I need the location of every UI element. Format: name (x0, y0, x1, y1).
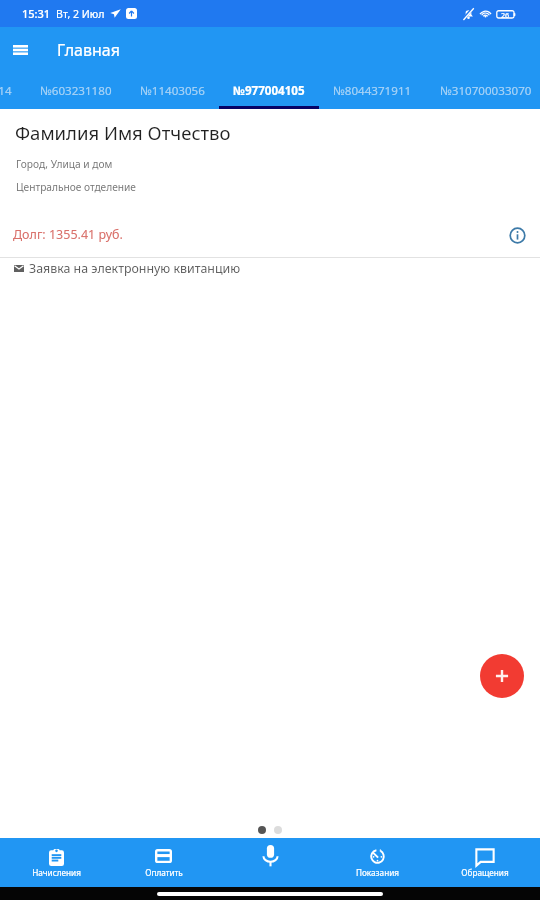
button[interactable]: Information (505, 223, 530, 248)
button[interactable]: №310700033070 (426, 73, 540, 109)
staticText: №11403056 (140, 83, 205, 99)
staticText: Долг: 1355.41 руб. (13, 226, 123, 243)
staticText: Оплатить (145, 867, 183, 878)
button[interactable]: Оплатить (110, 838, 217, 887)
staticText: Показания (356, 867, 399, 878)
staticText: Центральное отделение (16, 180, 136, 194)
staticText: Вт, 2 Июл (56, 7, 105, 21)
staticText: Главная (57, 39, 120, 61)
staticText: №310700033070 (440, 83, 532, 99)
button[interactable]: Add (480, 654, 524, 698)
staticText: №977004105 (233, 83, 305, 99)
button[interactable]: №600123114 (0, 73, 26, 109)
button[interactable]: Начисления (3, 838, 110, 887)
staticText: 26 (501, 10, 510, 20)
button[interactable]: №977004105 (219, 73, 319, 109)
staticText: №603231180 (40, 83, 112, 99)
staticText: Город, Улица и дом (16, 157, 113, 171)
button[interactable]: Показания (324, 838, 431, 887)
button[interactable]: Заявка на электронную квитанцию (0, 258, 540, 279)
staticText: №8044371911 (333, 83, 412, 99)
button[interactable]: №11403056 (126, 73, 219, 109)
button[interactable]: Voice assistant (217, 838, 324, 887)
button[interactable]: Обращения (431, 838, 538, 887)
staticText: Фамилия Имя Отчество (15, 120, 231, 145)
button[interactable]: Open navigation menu (1, 31, 39, 69)
staticText: Начисления (32, 867, 81, 878)
staticText: Заявка на электронную квитанцию (29, 260, 241, 277)
staticText: №600123114 (0, 83, 12, 99)
button[interactable]: №8044371911 (319, 73, 426, 109)
staticText: Обращения (461, 867, 509, 878)
staticText: 15:31 (22, 6, 51, 21)
button[interactable]: №603231180 (26, 73, 126, 109)
